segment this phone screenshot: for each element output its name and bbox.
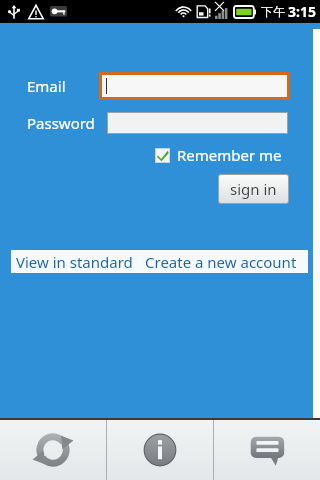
staticText: Password xyxy=(27,113,95,133)
staticText: sign in xyxy=(230,179,277,199)
button[interactable]: Messages xyxy=(214,420,320,480)
staticText: View in standard xyxy=(16,252,133,272)
staticText: 3:15 xyxy=(288,2,316,21)
button[interactable]: Remember me xyxy=(155,145,282,165)
staticText: Remember me xyxy=(177,145,282,165)
staticText: Create a new account xyxy=(145,252,297,272)
button[interactable]: sign in xyxy=(219,175,288,203)
button[interactable]: View in standard xyxy=(11,252,138,272)
staticText: 下午 xyxy=(261,4,285,19)
button[interactable]: Create a new account xyxy=(143,252,299,272)
button[interactable] xyxy=(102,75,287,97)
button[interactable]: Refresh xyxy=(0,420,106,480)
button[interactable]: Info xyxy=(107,420,213,480)
staticText: Email xyxy=(27,76,66,96)
